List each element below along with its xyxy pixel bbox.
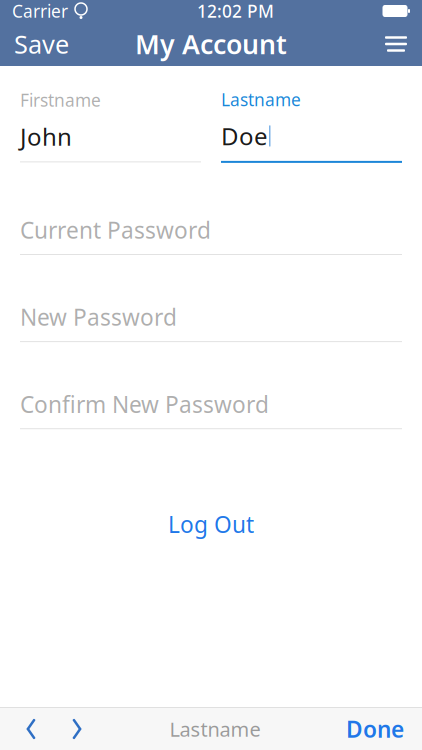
button[interactable]: Firstname — [20, 88, 201, 162]
staticText: My Account — [135, 26, 287, 62]
staticText: John — [20, 120, 72, 152]
button[interactable]: Save — [0, 22, 83, 66]
button[interactable]: Current Password — [0, 215, 422, 255]
button[interactable]: New Password — [0, 302, 422, 342]
button[interactable]: Previous field — [8, 708, 54, 750]
staticText: Firstname — [20, 88, 101, 111]
staticText: New Password — [20, 302, 177, 332]
staticText: Doe — [221, 120, 268, 152]
staticText: Done — [346, 714, 404, 744]
staticText: Lastname — [221, 88, 301, 111]
staticText: Carrier — [12, 0, 68, 22]
staticText: Log Out — [168, 509, 254, 539]
staticText: Confirm New Password — [20, 389, 269, 419]
button[interactable]: Menu — [370, 22, 422, 66]
staticText: Lastname — [169, 716, 260, 742]
button[interactable]: Next field — [54, 708, 100, 750]
staticText: Save — [14, 27, 69, 61]
button[interactable]: Lastname — [221, 88, 402, 163]
button[interactable]: Log Out — [144, 501, 278, 547]
staticText: 12:02 PM — [197, 0, 274, 22]
staticText: Current Password — [20, 215, 211, 245]
button[interactable]: Confirm New Password — [0, 389, 422, 429]
button[interactable]: Done — [330, 708, 422, 750]
